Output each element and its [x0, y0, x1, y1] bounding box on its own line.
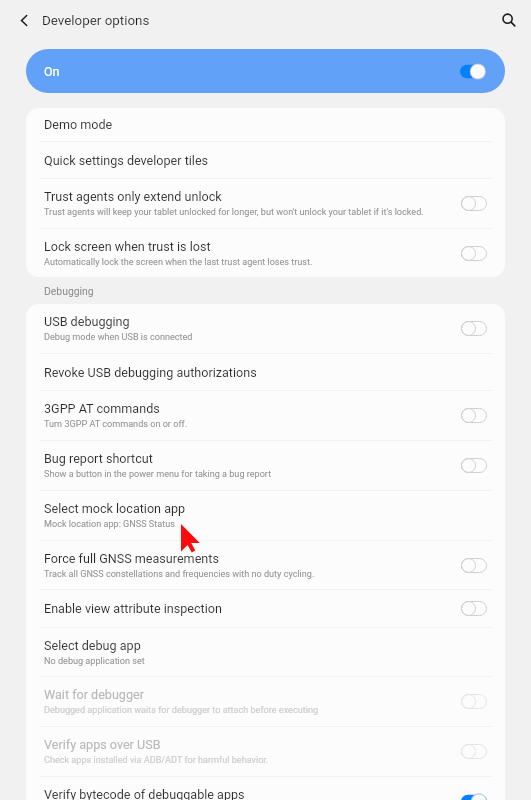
button[interactable]: Lock screen when trust is lost — [26, 229, 505, 277]
staticText: Quick settings developer tiles — [44, 153, 209, 168]
staticText: No debug application set — [44, 656, 145, 667]
staticText: Lock screen when trust is lost — [44, 239, 211, 254]
staticText: Demo mode — [44, 117, 113, 132]
staticText: Verify apps over USB — [44, 737, 161, 752]
button[interactable]: Toggle off — [461, 558, 487, 573]
staticText: 3GPP AT commands — [44, 401, 160, 416]
button[interactable]: Select debug app — [26, 628, 505, 676]
staticText: Debugged application waits for debugger … — [44, 705, 319, 716]
staticText: Turn 3GPP AT commands on or off. — [44, 419, 188, 430]
button[interactable]: USB debugging — [26, 304, 505, 353]
staticText: USB debugging — [44, 314, 130, 329]
button[interactable]: Bug report shortcut — [26, 441, 505, 490]
button[interactable]: Wait for debugger — [26, 677, 505, 726]
staticText: Developer options — [42, 13, 150, 29]
staticText: Wait for debugger — [44, 687, 144, 702]
staticText: Verify bytecode of debuggable apps — [44, 787, 245, 800]
staticText: On — [44, 64, 60, 79]
staticText: Revoke USB debugging authorizations — [44, 365, 257, 380]
button[interactable]: Toggle off — [461, 408, 487, 423]
staticText: Show a button in the power menu for taki… — [44, 469, 272, 480]
button[interactable]: Back — [7, 4, 40, 37]
button[interactable]: Force full GNSS measurements — [26, 541, 505, 589]
button[interactable]: Toggle off — [461, 601, 487, 616]
staticText: Debugging — [44, 285, 94, 297]
button[interactable]: On — [26, 49, 505, 93]
button[interactable]: Select mock location app — [26, 491, 505, 540]
button[interactable]: 3GPP AT commands — [26, 391, 505, 440]
button[interactable]: Toggle off — [461, 246, 487, 261]
button[interactable]: Trust agents only extend unlock — [26, 179, 505, 228]
staticText: Automatically lock the screen when the l… — [44, 257, 313, 268]
button[interactable]: Enable view attribute inspection — [26, 590, 505, 627]
staticText: Select mock location app — [44, 501, 186, 516]
staticText: Enable view attribute inspection — [44, 601, 222, 616]
button[interactable]: Verify bytecode of debuggable apps — [26, 777, 505, 800]
staticText: Track all GNSS constellations and freque… — [44, 569, 315, 580]
staticText: Mock location app: GNSS Status — [44, 519, 175, 530]
staticText: Force full GNSS measurements — [44, 551, 219, 566]
staticText: Select debug app — [44, 638, 141, 653]
button[interactable]: Toggle on — [461, 793, 487, 800]
staticText: Trust agents will keep your tablet unloc… — [44, 207, 424, 218]
button[interactable]: Quick settings developer tiles — [26, 142, 505, 178]
staticText: Trust agents only extend unlock — [44, 189, 222, 204]
button[interactable]: Toggle off — [461, 694, 487, 709]
staticText: Debug mode when USB is connected — [44, 332, 193, 343]
button[interactable]: Toggle off — [461, 744, 487, 759]
button[interactable]: Revoke USB debugging authorizations — [26, 354, 505, 390]
button[interactable]: Verify apps over USB — [26, 727, 505, 776]
button[interactable]: Demo mode — [26, 108, 505, 141]
button[interactable]: Toggle off — [461, 196, 487, 211]
button[interactable]: Toggle off — [461, 321, 487, 336]
button[interactable]: Toggle off — [461, 458, 487, 473]
button[interactable]: Toggle on — [460, 63, 486, 80]
staticText: Check apps installed via ADB/ADT for har… — [44, 755, 269, 766]
button[interactable]: Search — [491, 4, 524, 37]
staticText: Bug report shortcut — [44, 451, 153, 466]
